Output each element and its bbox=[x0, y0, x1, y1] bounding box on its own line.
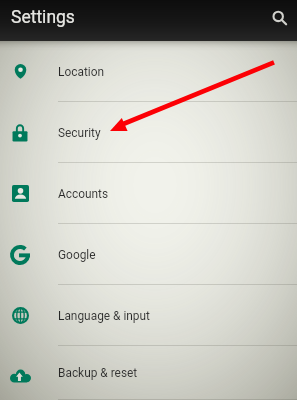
button[interactable]: Google bbox=[0, 224, 297, 285]
button[interactable]: Language & input bbox=[0, 285, 297, 346]
button[interactable]: Security bbox=[0, 102, 297, 163]
staticText: Security bbox=[58, 126, 101, 140]
staticText: Location bbox=[58, 65, 105, 79]
button[interactable]: Location bbox=[0, 41, 297, 102]
button[interactable]: Search bbox=[260, 1, 290, 31]
staticText: Accounts bbox=[58, 187, 109, 201]
button[interactable]: Accounts bbox=[0, 163, 297, 224]
button[interactable]: Backup & reset bbox=[0, 346, 297, 400]
staticText: Backup & reset bbox=[58, 366, 138, 380]
staticText: Language & input bbox=[58, 309, 150, 323]
staticText: Google bbox=[58, 248, 96, 262]
staticText: Settings bbox=[11, 7, 75, 28]
